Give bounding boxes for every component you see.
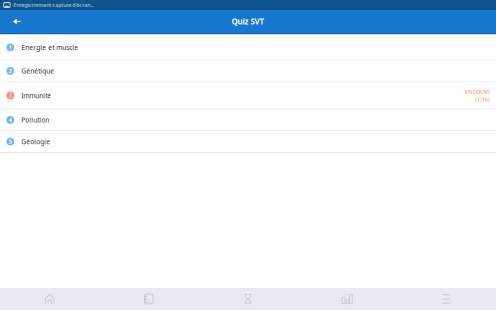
staticText: 3 [9,92,12,99]
staticText: Pollution [21,115,49,124]
staticText: Immunité [21,91,51,100]
button[interactable]: Lessons [99,288,198,310]
button[interactable]: Statistics [298,288,397,310]
button[interactable]: Back [0,9,30,33]
staticText: Enregistrement capture d'écran... [13,1,93,9]
button[interactable]: 3 [0,82,496,109]
button[interactable]: Home [0,288,99,310]
staticText: Quiz SVT [231,16,264,27]
button[interactable]: Quiz [198,288,298,310]
staticText: 2 [9,67,12,75]
button[interactable]: 1 [0,35,496,60]
staticText: Energie et muscle [21,43,78,52]
staticText: Génétique [21,67,54,75]
staticText: 1 [9,44,12,51]
staticText: 5 [9,138,12,145]
button[interactable]: 5 [0,131,496,152]
staticText: 4 [9,116,12,123]
staticText: Géologie [21,137,50,146]
staticText: EN COURS [465,88,490,95]
staticText: (1/16) [475,96,490,103]
button[interactable]: 2 [0,61,496,81]
button[interactable]: 4 [0,110,496,130]
